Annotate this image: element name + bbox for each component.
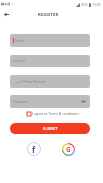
staticText: Email id [13,59,25,63]
staticText: G [66,145,71,154]
staticText: Name [15,39,24,43]
button[interactable]: Show password [80,98,87,105]
staticText: I agree to Terms & conditions [32,111,79,116]
staticText: f [32,144,36,155]
button[interactable]: Back [1,9,11,19]
button[interactable]: Name [10,34,90,47]
staticText: SUBMIT [43,126,58,131]
button[interactable]: Email id [10,55,90,67]
staticText: Password [13,100,28,104]
button[interactable]: Sign in with Google [62,143,75,156]
button[interactable]: Password [10,95,90,108]
button[interactable]: Phone Number [10,75,90,88]
staticText: 45% [81,2,88,7]
staticText: REGISTER [38,12,59,17]
button[interactable]: Sign in with Facebook [27,142,41,156]
staticText: Phone Number [23,80,46,84]
staticText: 15:05 [92,2,101,7]
button[interactable]: SUBMIT [10,123,90,134]
button[interactable]: I agree to Terms & conditions [27,109,79,118]
